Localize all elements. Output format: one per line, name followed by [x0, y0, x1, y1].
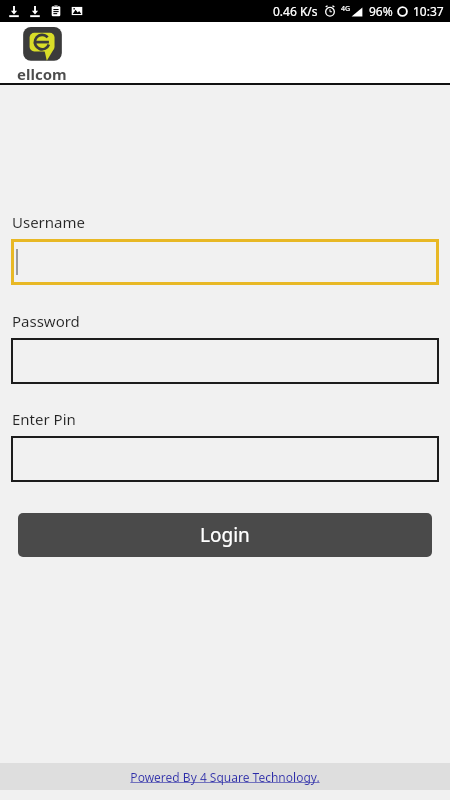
- staticText: Login: [200, 522, 250, 548]
- button[interactable]: [11, 436, 439, 482]
- button[interactable]: [11, 338, 439, 384]
- button[interactable]: [11, 239, 439, 285]
- staticText: Powered By 4 Square Technology.: [130, 769, 320, 785]
- staticText: 0.46 K/s: [273, 3, 318, 19]
- staticText: 10:37: [413, 3, 444, 19]
- staticText: 4G: [341, 4, 351, 14]
- staticText: Password: [12, 311, 80, 331]
- staticText: Username: [12, 212, 85, 232]
- staticText: Enter Pin: [12, 409, 76, 429]
- button[interactable]: Powered By 4 Square Technology.: [0, 763, 450, 790]
- staticText: 96%: [369, 3, 393, 19]
- staticText: ellcom: [17, 64, 67, 83]
- button[interactable]: Login: [18, 513, 432, 557]
